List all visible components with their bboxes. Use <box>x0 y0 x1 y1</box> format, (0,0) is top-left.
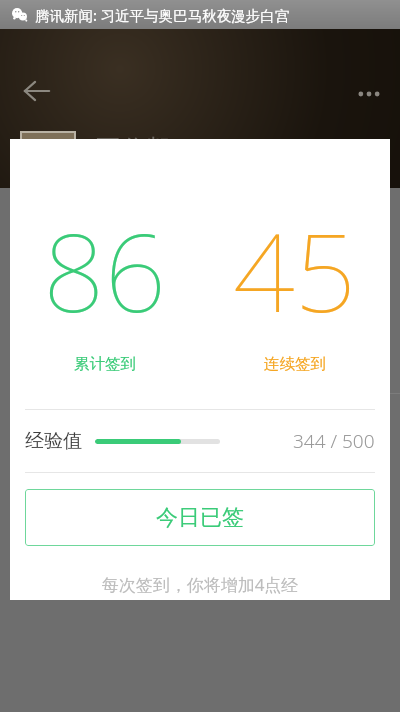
staticText: 经验值 <box>25 429 82 453</box>
button[interactable]: 腾讯新闻: 习近平与奥巴马秋夜漫步白宫 <box>0 0 400 29</box>
staticText: 连续签到 <box>264 354 326 374</box>
button[interactable]: 86 <box>10 197 200 374</box>
staticText: 今日已签 <box>156 504 244 532</box>
button[interactable]: More options <box>352 77 386 111</box>
staticText: 344 / 500 <box>293 428 375 454</box>
staticText: 王俊凯 <box>95 133 173 166</box>
staticText: 45 <box>233 197 357 344</box>
button[interactable]: Back <box>18 72 56 110</box>
button[interactable]: 今日已签 <box>25 489 375 546</box>
staticText: 累计签到 <box>74 354 136 374</box>
staticText: 的小伙伴们，本次活动也到… <box>56 437 300 463</box>
staticText: 2 <box>27 415 35 433</box>
staticText: 腾讯新闻: 习近平与奥巴马秋夜漫步白宫 <box>35 5 290 25</box>
button[interactable]: Compose <box>320 372 376 428</box>
staticText: 置顶 <box>60 416 88 434</box>
staticText: 每次签到，你将增加4点经 验值还可以帮Club上榜哦 <box>30 573 370 600</box>
button[interactable]: 45 <box>200 197 390 374</box>
staticText: 86 <box>43 197 167 344</box>
